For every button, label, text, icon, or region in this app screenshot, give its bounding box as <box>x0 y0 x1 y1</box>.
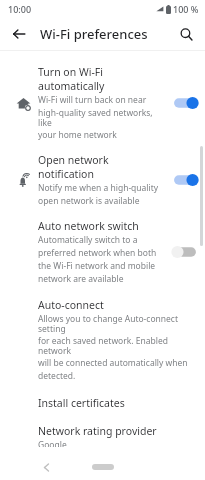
button[interactable]: Back <box>36 457 56 477</box>
staticText: high-quality saved networks, like <box>38 107 167 128</box>
staticText: 10:00 <box>8 3 32 15</box>
staticText: open network is available <box>38 195 140 207</box>
staticText: Auto network switch <box>38 219 139 233</box>
staticText: Network rating provider <box>38 424 157 438</box>
staticText: Google <box>38 439 67 447</box>
staticText: Auto-connect <box>38 298 104 312</box>
button[interactable]: On <box>171 94 199 112</box>
staticText: the Wi-Fi network and mobile <box>38 260 156 272</box>
button[interactable]: Install certificates <box>0 389 205 417</box>
staticText: Allows you to change Auto-connect settin… <box>38 313 199 334</box>
staticText: network are available <box>38 273 124 285</box>
button[interactable]: Back <box>6 21 32 47</box>
staticText: Automatically switch to a <box>38 234 138 246</box>
staticText: detected. <box>38 370 76 382</box>
staticText: Wi-Fi will turn back on near <box>38 94 147 106</box>
button[interactable]: Off <box>171 243 199 261</box>
button[interactable]: Search <box>173 21 199 47</box>
button[interactable]: Turn on Wi-Fi automatically <box>0 59 205 147</box>
button[interactable]: On <box>171 171 199 189</box>
button[interactable]: Auto-connect <box>0 291 205 389</box>
staticText: Wi-Fi preferences <box>40 25 173 43</box>
staticText: will be connected automatically when <box>38 357 188 369</box>
staticText: 100 % <box>173 3 199 15</box>
button[interactable]: Home <box>92 464 114 470</box>
staticText: for each saved network. Enabled network <box>38 335 199 356</box>
staticText: Turn on Wi-Fi automatically <box>38 65 167 93</box>
staticText: your home network <box>38 129 117 141</box>
button[interactable]: Open network notification <box>0 147 205 213</box>
staticText: Open network notification <box>38 153 167 181</box>
button[interactable]: Network rating provider <box>0 417 205 454</box>
button[interactable]: Auto network switch <box>0 213 205 291</box>
staticText: preferred network when both <box>38 247 157 259</box>
staticText: Notify me when a high-quality <box>38 182 159 194</box>
staticText: Install certificates <box>38 396 125 410</box>
